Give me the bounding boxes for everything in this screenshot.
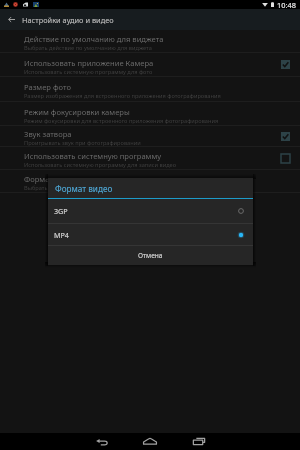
staticText: Отмена — [138, 251, 163, 260]
staticText: Режим фокусировки камеры — [24, 107, 130, 117]
staticText: Выбрать действие по умолчанию для виджет… — [24, 44, 152, 52]
button[interactable]: 3GP — [48, 199, 253, 223]
button[interactable]: Режим фокусировки камеры — [0, 102, 300, 125]
button[interactable]: Home — [132, 433, 168, 450]
button[interactable]: Использовать приложение Камера — [0, 53, 300, 76]
staticText: Размер фото — [24, 82, 71, 92]
staticText: 3GP — [54, 206, 237, 216]
staticText: Выбрать формат видео — [24, 184, 88, 192]
staticText: MP4 — [54, 230, 237, 240]
staticText: Настройки аудио и видео — [22, 15, 114, 25]
staticText: Звук затвора — [24, 129, 72, 139]
staticText: Размер изображения для встроенного прило… — [24, 92, 221, 100]
button[interactable]: Размер фото — [0, 77, 300, 101]
button[interactable]: MP4 — [48, 224, 253, 245]
staticText: Проигрывать звук при фотографировании — [24, 139, 141, 147]
button[interactable]: Back — [0, 9, 22, 30]
button[interactable]: Действие по умолчанию для виджета — [0, 30, 300, 52]
staticText: Использовать системную программу для зап… — [24, 161, 177, 169]
button[interactable]: Звук затвора — [0, 126, 300, 146]
staticText: Формат видео — [55, 183, 113, 194]
staticText: 10:48 — [277, 0, 296, 9]
staticText: Формат видео — [24, 174, 78, 184]
staticText: Действие по умолчанию для виджета — [24, 34, 164, 44]
button[interactable]: Back — [84, 433, 120, 450]
button[interactable]: Отмена — [48, 246, 253, 265]
staticText: Режим фокусировки для встроенного прилож… — [24, 117, 219, 125]
staticText: Использовать системную программу для фот… — [24, 68, 153, 76]
button[interactable]: Recent apps — [181, 433, 217, 450]
button[interactable]: Формат видео — [0, 170, 300, 192]
staticText: Использовать приложение Камера — [24, 58, 154, 68]
button[interactable]: Использовать системную программу — [0, 147, 300, 169]
staticText: Использовать системную программу — [24, 151, 162, 161]
